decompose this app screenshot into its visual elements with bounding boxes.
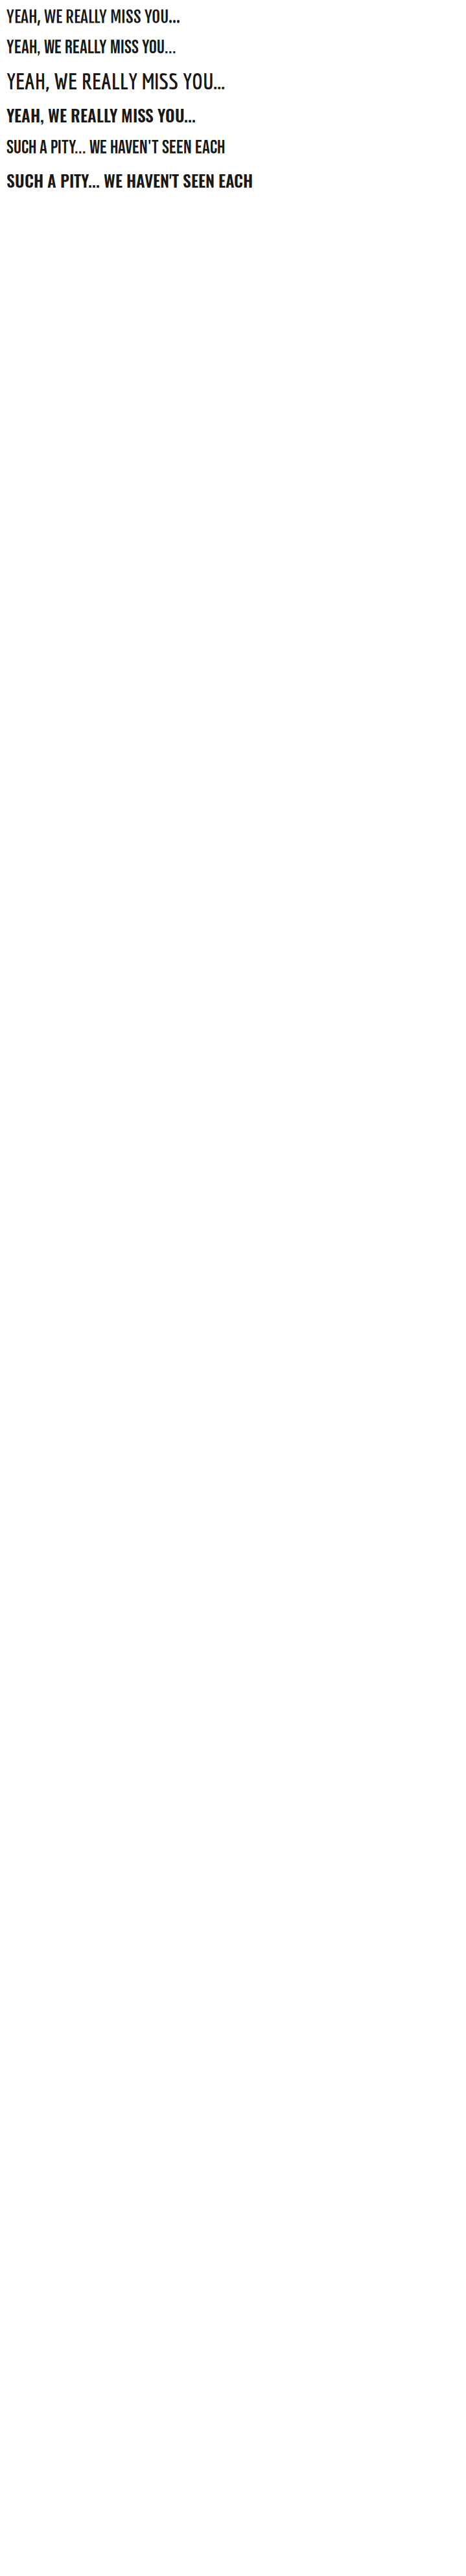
staticText: YEAH, WE REALLY MISS YOU... <box>6 103 196 127</box>
staticText: SUCH A PITY... WE HAVEN'T SEEN EACH <box>6 136 225 159</box>
staticText: YEAH, WE REALLY MISS YOU... <box>6 36 176 59</box>
staticText: YEAH, WE REALLY MISS YOU... <box>6 68 225 94</box>
staticText: YEAH, WE REALLY MISS YOU... <box>6 6 180 27</box>
staticText: SUCH A PITY... WE HAVEN'T SEEN EACH <box>6 168 253 192</box>
